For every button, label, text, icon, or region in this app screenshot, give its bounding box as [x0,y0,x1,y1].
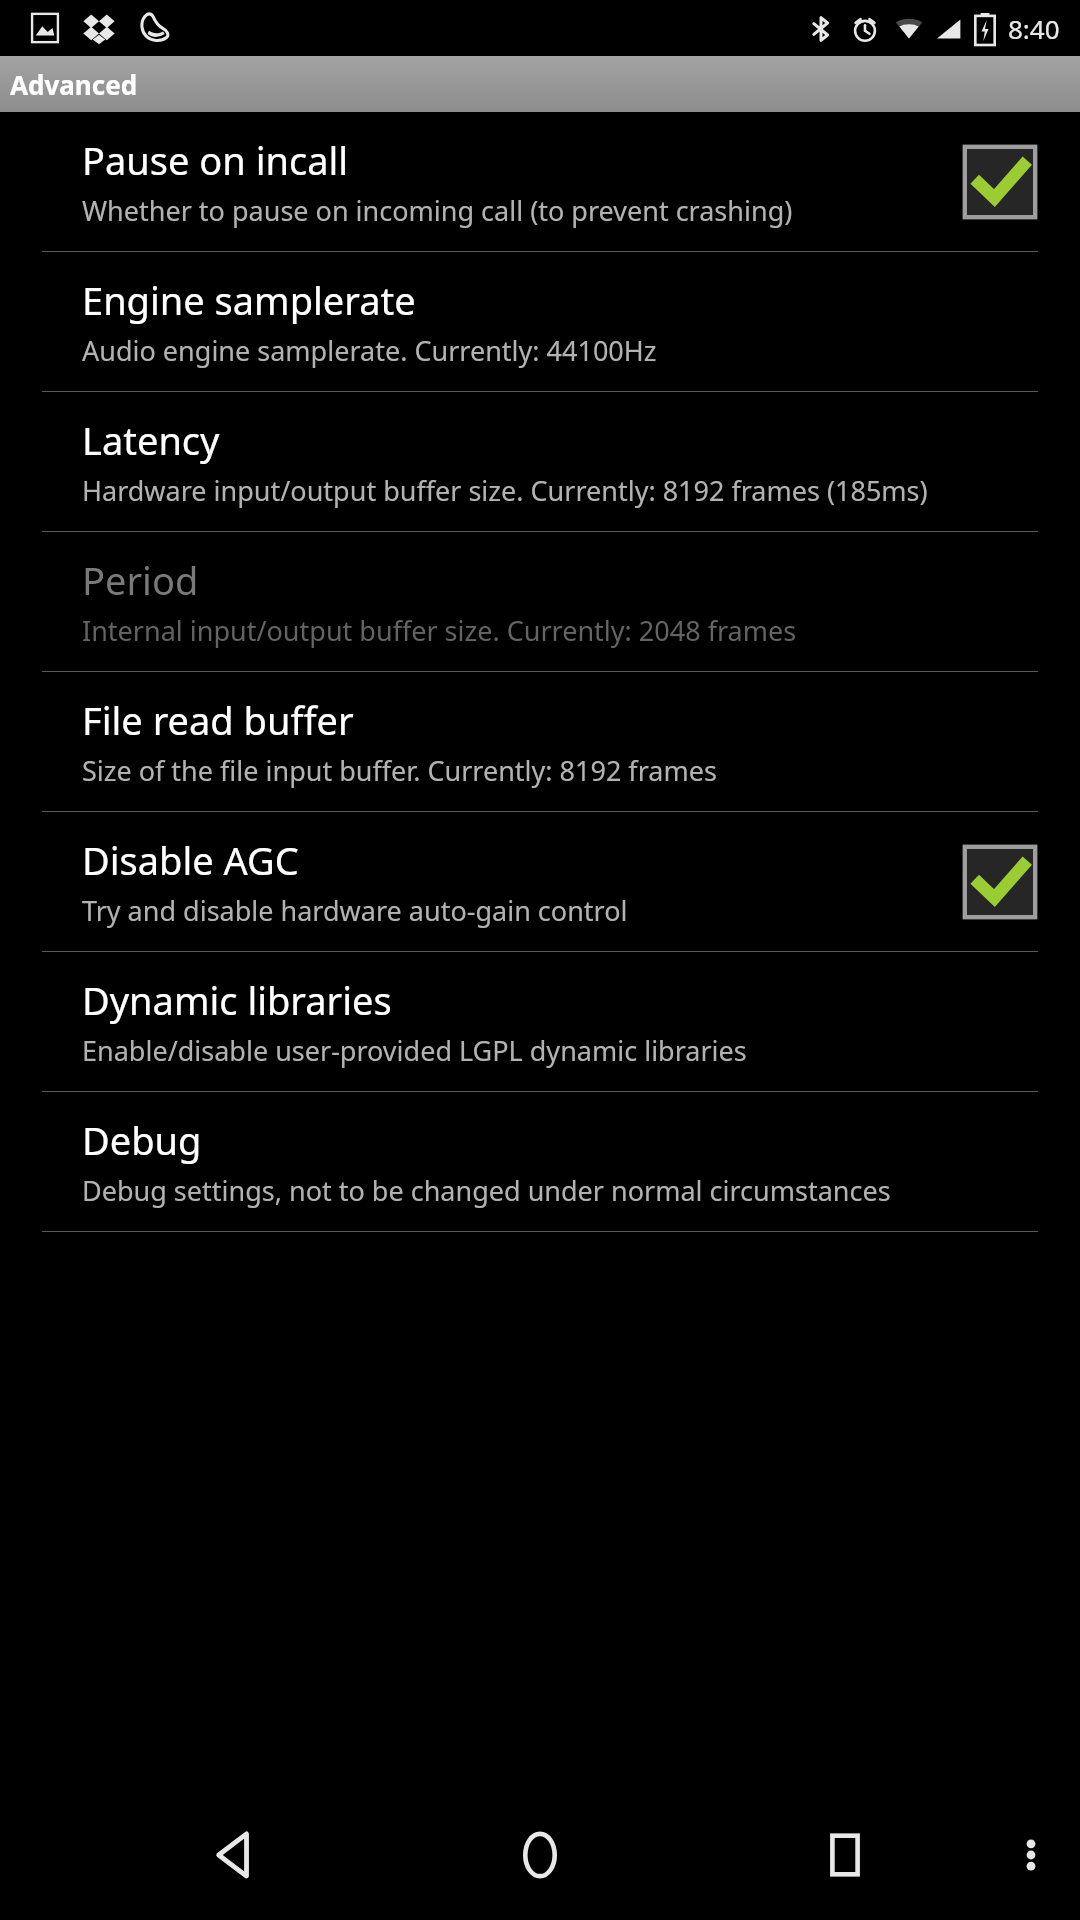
button[interactable]: Engine samplerate [0,252,1080,391]
staticText: Hardware input/output buffer size. Curre… [82,472,928,509]
button[interactable]: Period [0,532,1080,671]
button[interactable]: Toggle Pause on incall [960,142,1040,222]
button[interactable]: File read buffer [0,672,1080,811]
staticText: Engine samplerate [82,274,416,326]
staticText: Advanced [10,67,138,102]
staticText: Dynamic libraries [82,974,392,1026]
button[interactable]: Home [495,1810,585,1900]
staticText: File read buffer [82,694,354,746]
staticText: Pause on incall [82,134,349,186]
button[interactable]: Debug [0,1092,1080,1231]
staticText: Period [82,554,199,606]
staticText: Debug settings, not to be changed under … [82,1172,891,1209]
staticText: Latency [82,414,220,466]
staticText: Enable/disable user-provided LGPL dynami… [82,1032,747,1069]
staticText: Size of the file input buffer. Currently… [82,752,717,789]
button[interactable]: Toggle Disable AGC [960,842,1040,922]
staticText: Disable AGC [82,834,299,886]
staticText: Internal input/output buffer size. Curre… [82,612,797,649]
staticText: Audio engine samplerate. Currently: 4410… [82,332,657,369]
button[interactable]: Recent apps [800,1810,890,1900]
button[interactable]: Pause on incall [0,112,1080,251]
staticText: Whether to pause on incoming call (to pr… [82,192,793,229]
button[interactable]: Disable AGC [0,812,1080,951]
button[interactable]: More options [996,1820,1066,1890]
button[interactable]: Latency [0,392,1080,531]
staticText: Debug [82,1114,202,1166]
staticText: 8:40 [1008,11,1060,46]
button[interactable]: Dynamic libraries [0,952,1080,1091]
button[interactable]: Back [190,1810,280,1900]
staticText: Try and disable hardware auto-gain contr… [82,892,628,929]
